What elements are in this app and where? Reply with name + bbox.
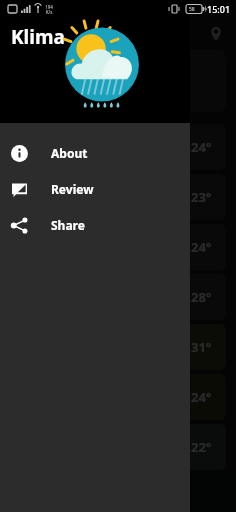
button[interactable]: Review: [0, 171, 190, 207]
staticText: 24°: [191, 138, 212, 156]
button[interactable]: 24°: [10, 124, 226, 170]
button[interactable]: 23°: [10, 174, 226, 220]
button[interactable]: About: [0, 135, 190, 171]
staticText: 58: [189, 6, 195, 13]
button[interactable]: 24°: [10, 224, 226, 270]
button[interactable]: 28°: [10, 274, 226, 320]
button[interactable]: 22°: [10, 424, 226, 470]
button[interactable]: Hourly: [118, 472, 236, 512]
button[interactable]: Share: [0, 207, 190, 243]
staticText: Share: [51, 217, 85, 233]
staticText: 194 K/s: [45, 4, 53, 15]
button[interactable]: 24°: [10, 374, 226, 420]
staticText: 28°: [191, 288, 212, 306]
staticText: 24°: [191, 388, 212, 406]
staticText: 15:01: [207, 3, 231, 15]
staticText: 23°: [191, 188, 212, 206]
staticText: 24°: [191, 238, 212, 256]
staticText: UV Index: [22, 62, 72, 77]
staticText: 22°: [191, 438, 212, 456]
button[interactable]: UV Index: [10, 50, 226, 112]
button[interactable]: Location: [204, 22, 228, 46]
staticText: About: [51, 145, 88, 161]
staticText: 31°: [191, 338, 212, 356]
staticText: Review: [51, 181, 94, 197]
button[interactable]: 31°: [10, 324, 226, 370]
staticText: Klima: [11, 24, 65, 50]
